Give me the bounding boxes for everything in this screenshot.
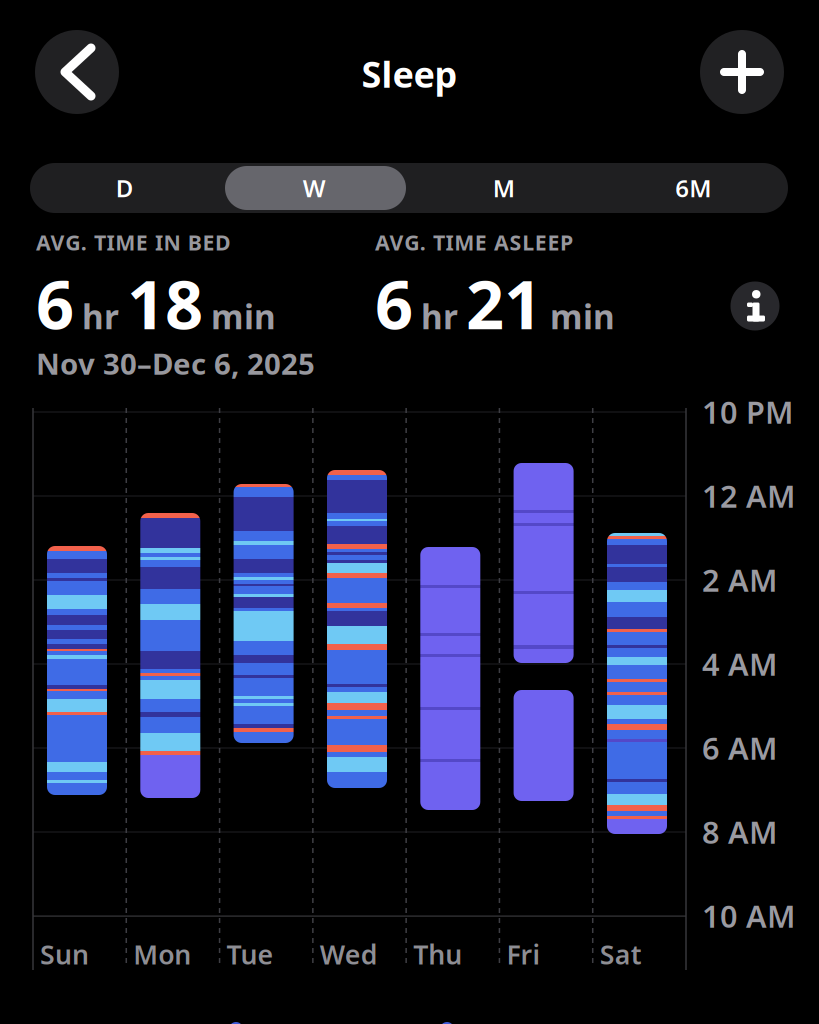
staticText: 2 AM [702,560,777,600]
staticText: 6M [675,172,711,204]
staticText: hr [421,294,458,338]
staticText: W [303,172,326,204]
staticText: AVG. TIME ASLEEP [375,228,573,256]
staticText: 10 PM [702,392,793,432]
staticText: Wed [320,936,378,972]
button[interactable]: D [30,163,219,213]
staticText: min [211,294,276,338]
staticText: Sun [40,936,89,972]
staticText: Tue [227,936,274,972]
staticText: 6 AM [702,728,777,768]
button[interactable]: Back [35,30,119,114]
staticText: 21 [466,259,542,347]
staticText: Thu [413,936,462,972]
staticText: Sleep [361,50,457,98]
staticText: 12 AM [702,476,795,516]
staticText: Nov 30–Dec 6, 2025 [36,344,315,383]
staticText: Sat [600,936,642,972]
staticText: Fri [506,936,540,972]
button[interactable]: About Sleep [730,281,780,331]
staticText: 10 AM [702,896,795,936]
staticText: D [116,172,134,204]
staticText: M [493,172,515,204]
button[interactable]: M [409,163,598,213]
staticText: 18 [127,259,203,347]
staticText: min [550,294,615,338]
button[interactable]: W [219,163,409,213]
button[interactable]: 6M [598,163,788,213]
staticText: 6 [375,259,413,347]
staticText: AVG. TIME IN BED [36,228,231,256]
button[interactable]: Add Data [700,30,784,114]
staticText: 8 AM [702,812,777,852]
staticText: hr [82,294,119,338]
staticText: Mon [133,936,191,972]
staticText: 4 AM [702,644,777,684]
staticText: 6 [36,259,74,347]
